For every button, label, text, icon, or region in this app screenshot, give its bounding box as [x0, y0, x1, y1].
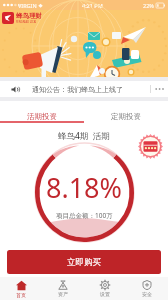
other: Coupon	[138, 134, 163, 159]
button[interactable]: 立即购买	[7, 250, 161, 274]
button[interactable]: Announcement	[0, 81, 168, 97]
other: Announcement	[11, 85, 20, 94]
staticText: 资产	[58, 291, 68, 297]
button[interactable]: 安全	[126, 277, 168, 300]
staticText: 22%	[143, 2, 154, 9]
staticText: 8.18%	[46, 169, 123, 206]
staticText: VIRGIN	[18, 2, 37, 9]
button[interactable]: 资产	[42, 277, 84, 300]
other: More	[155, 86, 164, 92]
staticText: 通知公告：我们蜂鸟上上线了	[32, 85, 123, 94]
staticText: FENGNIAO LICAI	[16, 20, 37, 24]
staticText: 安全	[142, 291, 152, 297]
staticText: 设置	[100, 291, 110, 297]
staticText: 立即购买	[67, 257, 101, 268]
button[interactable]: 定期投资	[84, 101, 168, 121]
staticText: 蜂鸟理财	[16, 12, 42, 20]
staticText: 4:21 PM	[82, 2, 103, 9]
button[interactable]: 活期投资	[0, 101, 84, 121]
button[interactable]: 首页	[0, 277, 42, 300]
button[interactable]: 设置	[84, 277, 126, 300]
staticText: 项目总金额：100万	[56, 211, 113, 220]
staticText: 首页	[16, 292, 26, 298]
staticText: 活期投资	[27, 112, 57, 121]
staticText: 蜂鸟4期 活期	[58, 130, 110, 142]
staticText: 定期投资	[111, 112, 141, 121]
